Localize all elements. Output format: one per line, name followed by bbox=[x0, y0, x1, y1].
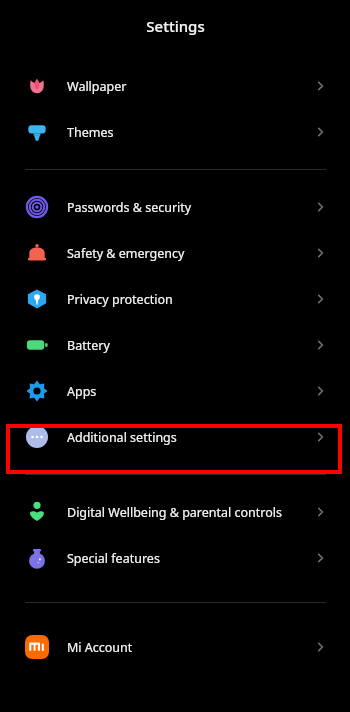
button[interactable]: Mi Account bbox=[0, 624, 350, 670]
staticText: Settings bbox=[146, 16, 205, 36]
staticText: Safety & emergency bbox=[67, 245, 312, 262]
staticText: Special features bbox=[67, 550, 312, 567]
button[interactable]: Themes bbox=[0, 109, 350, 155]
staticText: Wallpaper bbox=[67, 78, 312, 95]
staticText: Mi Account bbox=[67, 639, 312, 656]
staticText: Privacy protection bbox=[67, 291, 312, 308]
button[interactable]: Special features bbox=[0, 535, 350, 581]
staticText: Apps bbox=[67, 383, 312, 400]
button[interactable]: Safety & emergency bbox=[0, 230, 350, 276]
button[interactable]: Wallpaper bbox=[0, 63, 350, 109]
button[interactable]: Passwords & security bbox=[0, 184, 350, 230]
button[interactable]: Additional settings bbox=[0, 414, 350, 460]
button[interactable]: Battery bbox=[0, 322, 350, 368]
staticText: Battery bbox=[67, 337, 312, 354]
button[interactable]: Digital Wellbeing & parental controls bbox=[0, 489, 350, 535]
staticText: Themes bbox=[67, 124, 312, 141]
staticText: Digital Wellbeing & parental controls bbox=[67, 504, 312, 521]
button[interactable]: Privacy protection bbox=[0, 276, 350, 322]
staticText: Passwords & security bbox=[67, 199, 312, 216]
staticText: Additional settings bbox=[67, 429, 312, 446]
button[interactable]: Apps bbox=[0, 368, 350, 414]
